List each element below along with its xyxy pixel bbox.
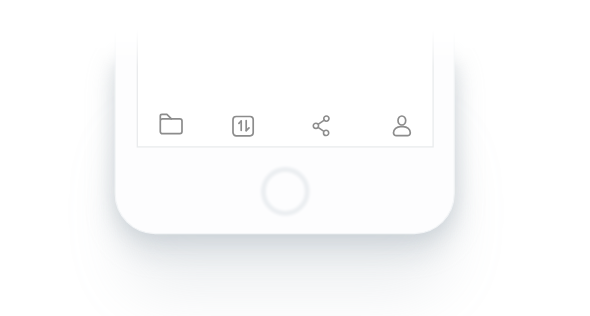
button[interactable] [139, 104, 205, 147]
button[interactable] [261, 167, 309, 215]
button[interactable] [288, 104, 354, 147]
button[interactable] [210, 104, 276, 147]
button[interactable] [369, 104, 435, 147]
